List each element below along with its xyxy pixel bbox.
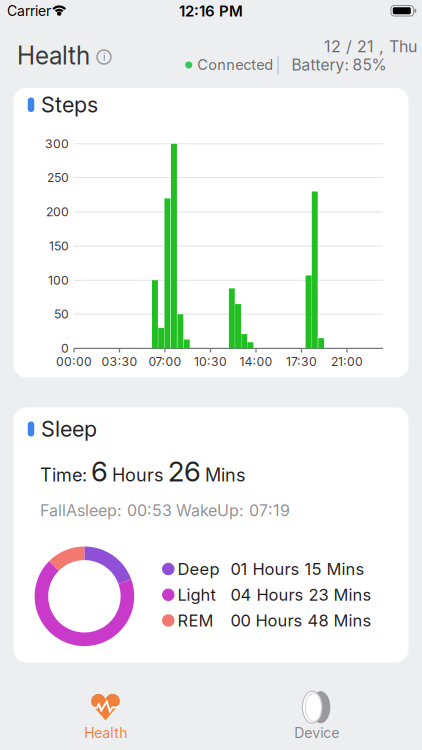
staticText: 00 Hours 48 Mins [230,611,371,630]
staticText: 250 [47,170,69,185]
staticText: Connected [197,56,273,73]
staticText: Carrier [7,3,51,19]
staticText: 01 Hours 15 Mins [230,559,364,579]
staticText: Health [84,725,127,741]
staticText: 14:00 [239,354,272,369]
staticText: 50 [54,307,69,321]
staticText: 21:00 [331,354,363,369]
staticText: 03:30 [101,354,137,369]
staticText: Light [177,585,215,605]
staticText: 0 [61,341,69,356]
staticText: FallAsleep: 00:53 [40,501,172,520]
staticText: WakeUp: 07:19 [176,501,290,520]
staticText: Mins [205,464,246,485]
staticText: Health [17,41,90,70]
staticText: 150 [49,239,69,253]
staticText: Deep [177,559,219,579]
staticText: 300 [45,137,69,151]
staticText: 04 Hours 23 Mins [230,585,371,605]
staticText: 200 [46,205,69,219]
staticText: 6 [91,455,108,488]
staticText: Battery: 85% [291,56,386,74]
staticText: 10:30 [194,354,227,369]
staticText: Device [294,725,339,741]
staticText: Sleep [41,416,97,442]
staticText: Steps [41,92,98,117]
staticText: 26 [168,455,201,488]
staticText: Hours [112,464,164,485]
staticText: 17:30 [286,354,317,369]
staticText: 07:00 [148,354,181,369]
staticText: REM [177,611,213,630]
staticText: 12:16 PM [179,2,243,20]
staticText: | [275,56,280,74]
staticText: 12 / 21 , Thu [324,37,417,56]
staticText: 00:00 [56,354,92,369]
staticText: Time: [40,464,87,485]
staticText: i [103,51,105,63]
staticText: 100 [48,273,69,287]
